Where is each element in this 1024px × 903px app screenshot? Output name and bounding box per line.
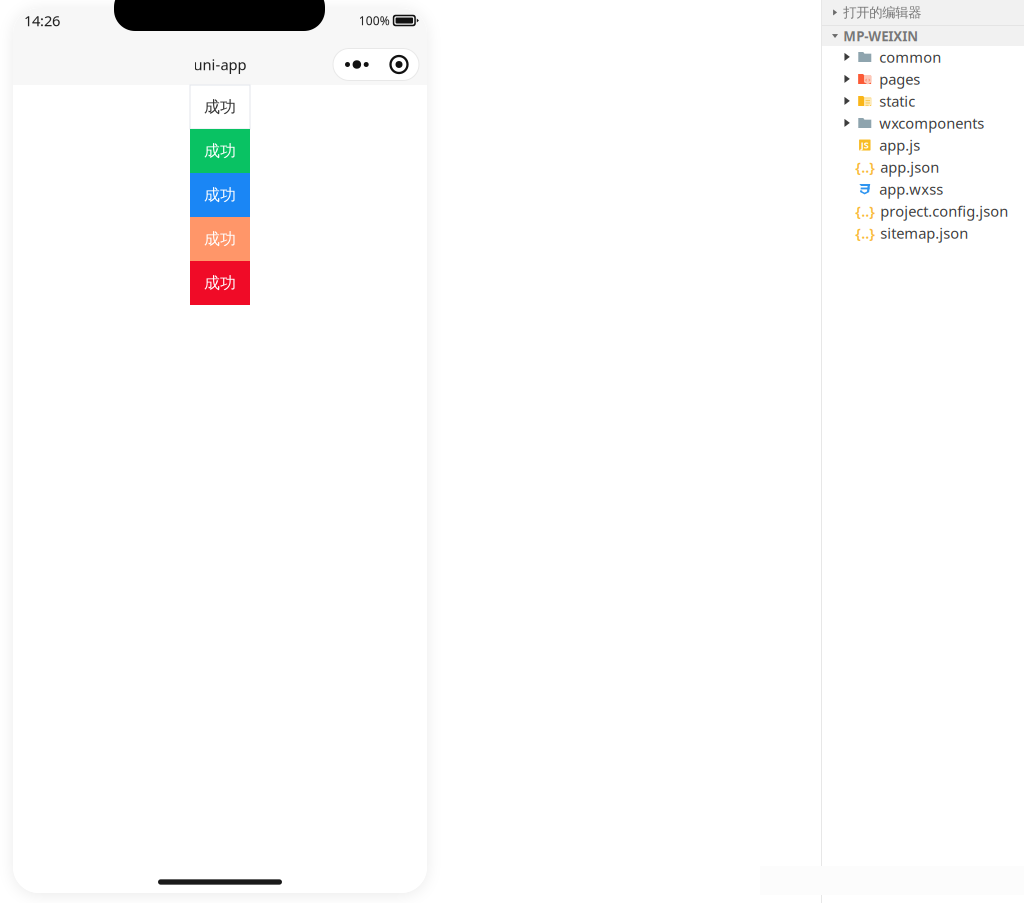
staticText: app.wxss <box>879 179 943 199</box>
staticText: static <box>879 91 915 111</box>
staticText: sitemap.json <box>880 223 968 243</box>
staticText: JS <box>861 139 869 151</box>
staticText: 打开的编辑器 <box>843 4 921 21</box>
staticText: app.json <box>880 157 939 177</box>
staticText: pages <box>879 69 920 89</box>
button[interactable]: {..} <box>822 156 1024 178</box>
staticText: wxcomponents <box>879 113 984 133</box>
staticText: {..} <box>855 157 875 177</box>
button[interactable]: wxcomponents <box>822 112 1024 134</box>
staticText: common <box>879 47 941 67</box>
staticText: 成功 <box>204 185 236 205</box>
staticText: 成功 <box>204 141 236 161</box>
staticText: app.js <box>879 135 920 155</box>
button[interactable]: common <box>822 46 1024 68</box>
button[interactable]: 打开的编辑器 <box>822 0 1024 25</box>
staticText: {..} <box>855 223 875 243</box>
button[interactable]: app.wxss <box>822 178 1024 200</box>
button[interactable]: Mini program menu <box>333 48 419 80</box>
staticText: 成功 <box>204 273 236 293</box>
button[interactable]: MP-WEIXIN <box>822 26 1024 46</box>
staticText: uni-app <box>193 55 246 74</box>
staticText: 14:26 <box>24 11 60 30</box>
button[interactable]: {..} <box>822 200 1024 222</box>
staticText: 100% <box>359 12 390 28</box>
staticText: {..} <box>855 201 875 221</box>
staticText: project.config.json <box>880 201 1008 221</box>
button[interactable]: {..} <box>822 222 1024 244</box>
staticText: 成功 <box>204 97 236 117</box>
button[interactable]: JS <box>822 134 1024 156</box>
staticText: MP-WEIXIN <box>843 27 918 45</box>
button[interactable]: static <box>822 90 1024 112</box>
button[interactable]: pages <box>822 68 1024 90</box>
staticText: 成功 <box>204 229 236 249</box>
